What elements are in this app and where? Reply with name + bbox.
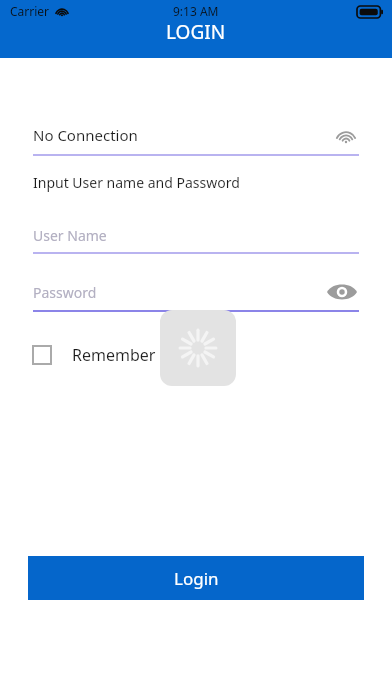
button[interactable]: Connection status	[333, 122, 359, 148]
staticText: Password	[33, 283, 97, 302]
button[interactable]: Login	[28, 556, 364, 600]
staticText: Remember	[72, 344, 156, 366]
staticText: Input User name and Password	[33, 173, 240, 192]
staticText: 9:13 AM	[173, 3, 219, 19]
button[interactable]: Remember	[33, 340, 156, 370]
staticText: No Connection	[33, 125, 138, 145]
staticText: User Name	[33, 226, 107, 245]
staticText: Carrier	[10, 3, 50, 19]
staticText: Login	[174, 567, 219, 590]
button[interactable]: Show password	[325, 279, 359, 305]
button[interactable]: Password	[33, 283, 325, 302]
staticText: LOGIN	[166, 19, 226, 45]
button[interactable]: User Name	[0, 222, 392, 248]
